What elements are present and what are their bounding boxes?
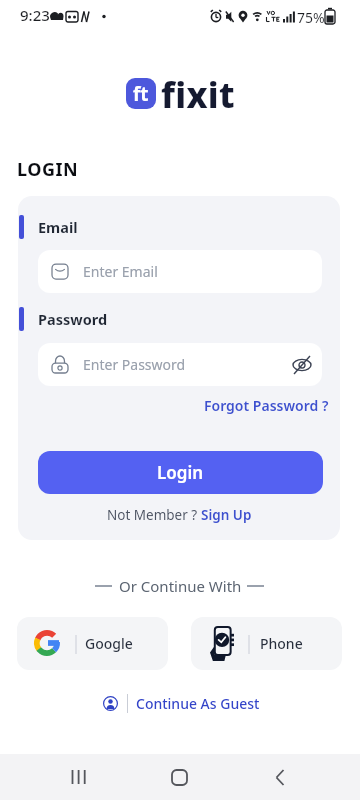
button[interactable]: Enter Email <box>38 250 322 293</box>
staticText: Email <box>38 217 78 237</box>
button[interactable]: Forgot Password ? <box>204 396 329 415</box>
button[interactable]: Continue As Guest <box>103 694 260 713</box>
staticText: Enter Password <box>83 355 186 374</box>
button[interactable]: Login <box>38 451 323 494</box>
button[interactable] <box>159 757 199 797</box>
button[interactable] <box>288 351 316 379</box>
button[interactable]: Google <box>17 617 168 670</box>
staticText: Continue As Guest <box>136 694 260 713</box>
staticText: 9:23 <box>20 5 50 25</box>
button[interactable] <box>58 757 98 797</box>
staticText: Not Member ? <box>107 506 201 524</box>
staticText: fixit <box>161 71 235 119</box>
staticText: ft <box>133 81 149 107</box>
staticText: Login <box>157 461 204 484</box>
button[interactable]: Sign Up <box>201 506 252 524</box>
button[interactable]: Phone <box>191 617 342 670</box>
staticText: Password <box>38 309 108 329</box>
staticText: LOGIN <box>17 157 79 182</box>
button[interactable]: Enter Password <box>38 343 322 386</box>
staticText: Or Continue With <box>119 576 242 596</box>
button[interactable] <box>260 757 300 797</box>
staticText: Enter Email <box>83 262 158 281</box>
staticText: Phone <box>260 634 303 653</box>
staticText: 75% <box>297 8 325 27</box>
staticText: Google <box>85 634 133 653</box>
